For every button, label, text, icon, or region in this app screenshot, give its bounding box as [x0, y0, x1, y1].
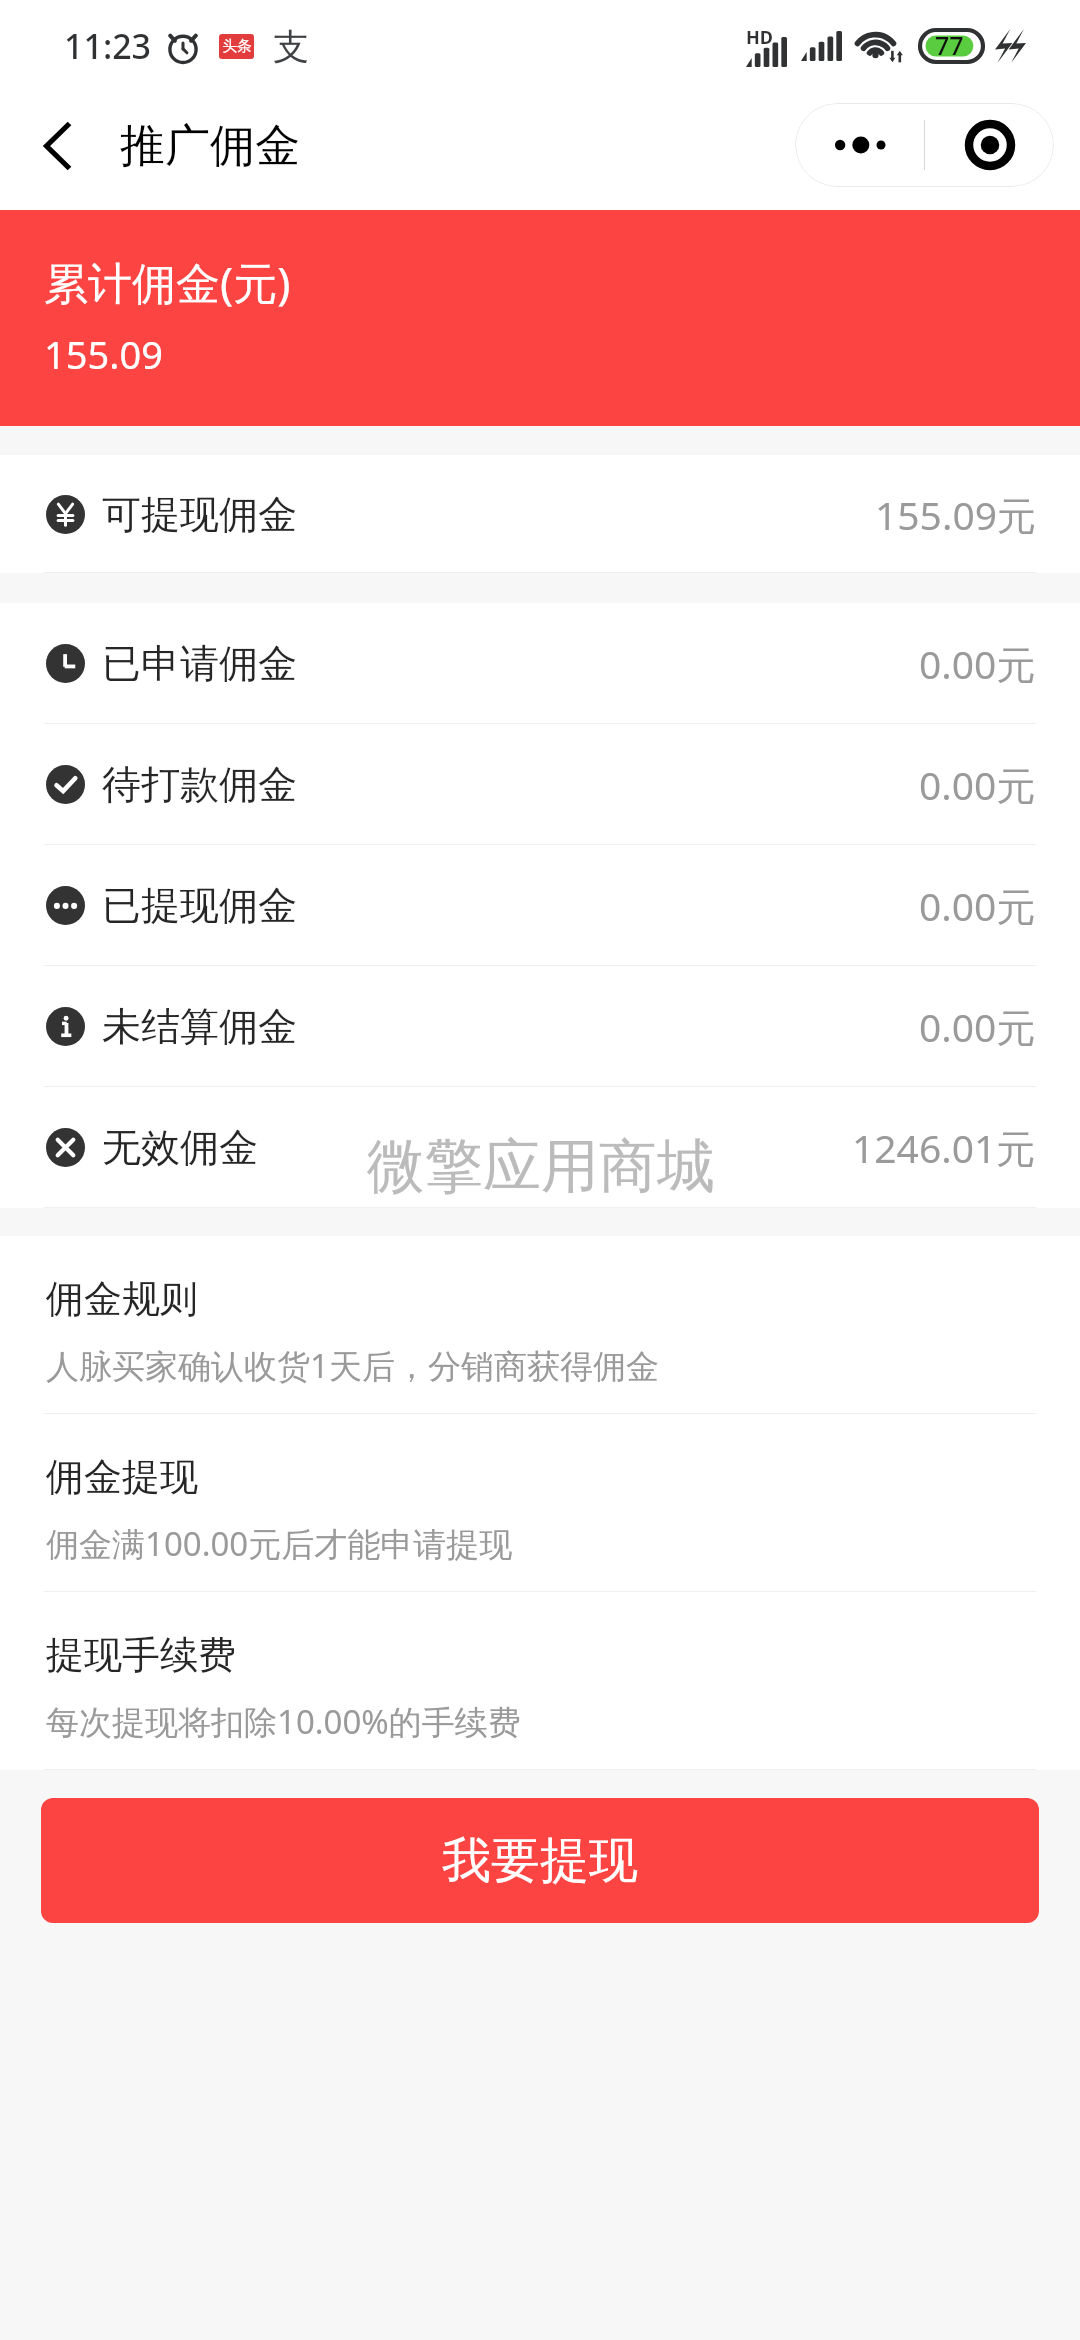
- button[interactable]: More options: [795, 103, 924, 187]
- staticText: 155.09: [44, 328, 163, 380]
- staticText: 可提现佣金: [102, 490, 297, 539]
- staticText: 1246.01元: [852, 1121, 1036, 1174]
- button[interactable]: 待打款佣金: [0, 724, 1080, 845]
- staticText: 头条: [222, 37, 252, 56]
- staticText: 每次提现将扣除10.00%的手续费: [46, 1699, 521, 1744]
- button[interactable]: 已申请佣金: [0, 603, 1080, 724]
- staticText: 微擎应用商城: [367, 1130, 715, 1203]
- button[interactable]: 佣金规则: [0, 1236, 1080, 1414]
- staticText: 提现手续费: [46, 1631, 236, 1679]
- button[interactable]: 我要提现: [41, 1798, 1039, 1923]
- button[interactable]: 可提现佣金: [0, 455, 1080, 573]
- staticText: 77: [935, 28, 964, 62]
- staticText: 11:23: [64, 23, 152, 69]
- button[interactable]: 未结算佣金: [0, 966, 1080, 1087]
- staticText: 人脉买家确认收货1天后，分销商获得佣金: [46, 1343, 659, 1388]
- staticText: 待打款佣金: [102, 760, 297, 809]
- staticText: 佣金规则: [46, 1275, 198, 1323]
- staticText: 已提现佣金: [102, 881, 297, 930]
- button[interactable]: 已提现佣金: [0, 845, 1080, 966]
- staticText: 佣金满100.00元后才能申请提现: [46, 1521, 513, 1566]
- button[interactable]: 无效佣金: [0, 1087, 1080, 1208]
- button[interactable]: 提现手续费: [0, 1592, 1080, 1770]
- staticText: 未结算佣金: [102, 1002, 297, 1051]
- staticText: 推广佣金: [120, 118, 300, 175]
- staticText: 我要提现: [442, 1830, 638, 1892]
- staticText: 佣金提现: [46, 1453, 198, 1501]
- staticText: 155.09元: [875, 488, 1036, 541]
- button[interactable]: Close mini program: [925, 103, 1054, 187]
- button[interactable]: Back: [18, 106, 98, 186]
- staticText: 0.00元: [919, 1000, 1036, 1053]
- staticText: 0.00元: [919, 637, 1036, 690]
- staticText: 无效佣金: [102, 1123, 258, 1172]
- staticText: HD: [746, 25, 773, 50]
- staticText: 0.00元: [919, 879, 1036, 932]
- staticText: 0.00元: [919, 758, 1036, 811]
- staticText: 已申请佣金: [102, 639, 297, 688]
- staticText: 支: [273, 24, 309, 69]
- staticText: 累计佣金(元): [44, 252, 291, 312]
- button[interactable]: 佣金提现: [0, 1414, 1080, 1592]
